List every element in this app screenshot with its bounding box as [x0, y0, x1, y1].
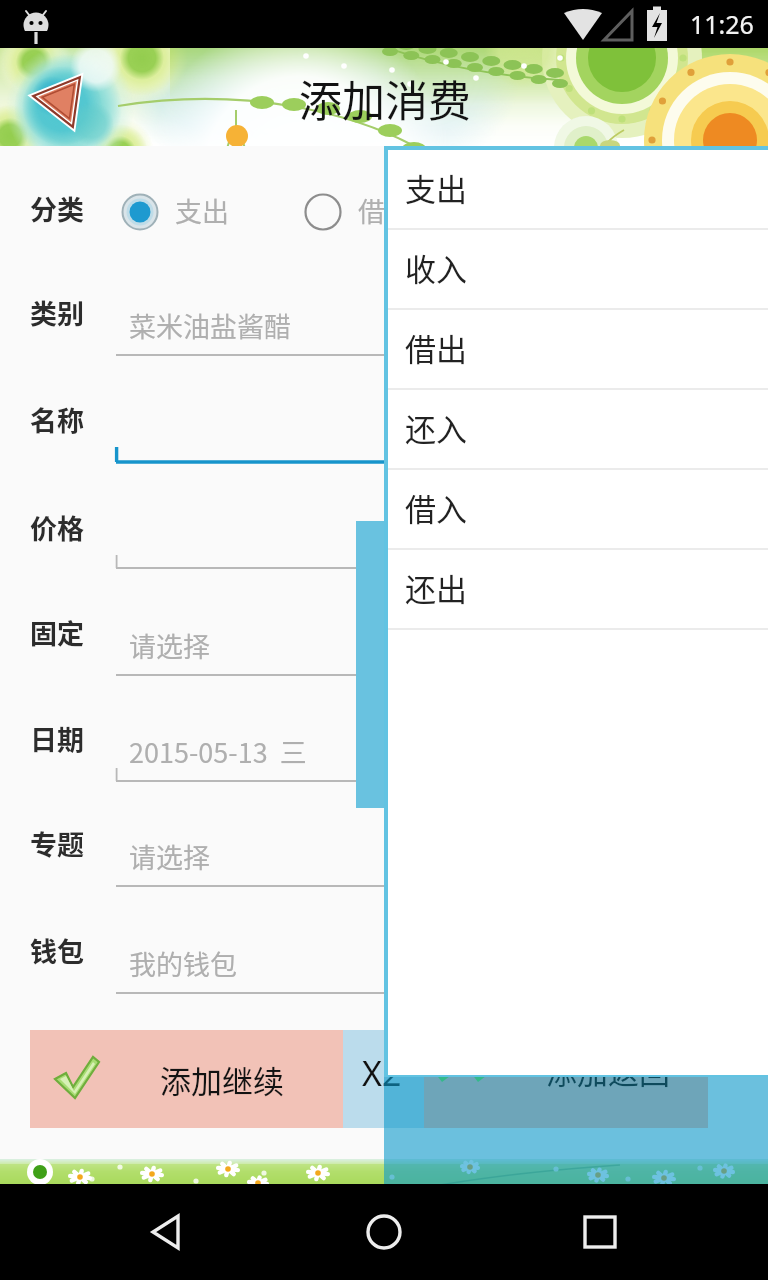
staticText: 借入	[405, 485, 467, 530]
button[interactable]: 支出	[388, 150, 768, 230]
button[interactable]: 借出	[388, 310, 768, 390]
button[interactable]: 借入	[388, 470, 768, 550]
button[interactable]	[114, 410, 740, 472]
button[interactable]: 添加返回	[424, 1070, 708, 1128]
button[interactable]: 添加继续	[30, 1030, 343, 1128]
staticText: 添加消费	[299, 67, 471, 129]
staticText: 分类	[30, 189, 84, 228]
staticText: 借出	[358, 191, 412, 230]
staticText: 2015-05-13 三	[129, 732, 307, 771]
staticText: X2	[362, 1050, 402, 1096]
button[interactable]: 还出	[388, 550, 768, 630]
button[interactable]: 支出	[118, 190, 229, 234]
button[interactable]: X2	[343, 1030, 708, 1128]
button[interactable]: 请选择	[114, 834, 740, 896]
staticText: 我的钱包	[129, 944, 237, 983]
staticText: 请选择	[129, 626, 210, 665]
staticText: 还入	[405, 405, 467, 450]
staticText: 添加继续	[160, 1057, 284, 1102]
staticText: 钱包	[30, 931, 84, 970]
button[interactable]: 2015-05-13 三	[114, 729, 740, 791]
staticText: 日期	[30, 719, 84, 758]
staticText: 添加返回	[546, 1048, 670, 1093]
button[interactable]: 还入	[484, 190, 595, 234]
staticText: 菜米油盐酱醋	[129, 306, 291, 345]
button[interactable]: Back	[30, 70, 92, 132]
staticText: 支出	[175, 191, 229, 230]
button[interactable]: 借出	[301, 190, 412, 234]
staticText: 11:26	[690, 7, 754, 41]
staticText: 支出	[405, 165, 467, 210]
button[interactable]: Recents	[552, 1184, 648, 1280]
staticText: 专题	[30, 824, 84, 863]
button[interactable]: 还入	[388, 390, 768, 470]
staticText: 还出	[405, 565, 467, 610]
button[interactable]: Back	[120, 1184, 216, 1280]
staticText: 借出	[405, 325, 467, 370]
button[interactable]	[114, 516, 740, 578]
staticText: 请选择	[129, 837, 210, 876]
button[interactable]: 请选择	[114, 623, 740, 685]
staticText: 固定	[30, 613, 84, 652]
button[interactable]: 菜米油盐酱醋	[114, 303, 740, 365]
staticText: 还入	[541, 191, 595, 230]
button[interactable]: 我的钱包	[114, 941, 740, 1003]
staticText: 名称	[30, 400, 84, 439]
staticText: 收入	[405, 245, 467, 290]
button[interactable]: 收入	[388, 230, 768, 310]
button[interactable]: Home	[336, 1184, 432, 1280]
staticText: 价格	[30, 508, 84, 547]
staticText: 类别	[30, 293, 84, 332]
